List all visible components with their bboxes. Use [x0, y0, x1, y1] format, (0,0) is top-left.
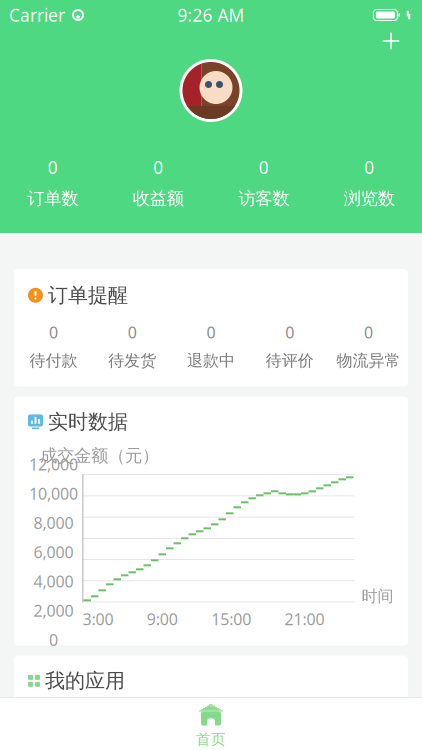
button[interactable]: 0 — [14, 322, 93, 370]
staticText: 订单数 — [27, 188, 78, 209]
staticText: 0 — [128, 322, 137, 343]
staticText: 0 — [153, 156, 163, 179]
staticText: 6,000 — [33, 541, 73, 562]
staticText: 退款中 — [187, 351, 235, 370]
staticText: 0 — [259, 156, 269, 179]
staticText: 订单提醒 — [48, 283, 128, 308]
staticText: 0 — [364, 322, 373, 343]
button[interactable]: Add — [370, 25, 412, 57]
staticText: 浏览数 — [344, 188, 395, 209]
staticText: 0 — [206, 322, 215, 343]
button[interactable]: 0 — [105, 156, 211, 209]
staticText: 0 — [49, 322, 58, 343]
staticText: 0 — [48, 156, 58, 179]
staticText: 收益额 — [133, 188, 184, 209]
staticText: 实时数据 — [48, 409, 128, 434]
button[interactable]: 0 — [316, 156, 422, 209]
staticText: 9:26 AM — [177, 3, 244, 26]
button[interactable]: 商品 — [146, 707, 276, 750]
staticText: 10,000 — [29, 483, 78, 504]
staticText: 15:00 — [211, 608, 251, 629]
staticText: 21:00 — [284, 608, 324, 629]
button[interactable]: 0 — [172, 322, 250, 370]
staticText: 首页 — [196, 730, 226, 748]
button[interactable]: 0 — [93, 322, 172, 370]
staticText: 待评价 — [266, 351, 314, 370]
staticText: 0 — [285, 322, 294, 343]
button[interactable]: 0 — [0, 156, 105, 209]
staticText: 12,000 — [29, 454, 78, 475]
staticText: 时间 — [361, 586, 393, 606]
staticText: Carrier — [9, 3, 65, 26]
staticText: 访客数 — [238, 188, 289, 209]
staticText: 0 — [49, 629, 58, 650]
staticText: 待发货 — [108, 351, 156, 370]
staticText: 2,000 — [33, 600, 73, 621]
staticText: 9:00 — [147, 608, 178, 629]
button[interactable]: 0 — [250, 322, 329, 370]
staticText: 我的应用 — [45, 669, 125, 693]
button[interactable]: 0 — [329, 322, 408, 370]
button[interactable]: 首页 — [0, 698, 422, 750]
staticText: 4,000 — [33, 571, 73, 592]
staticText: 0 — [364, 156, 374, 179]
staticText: 8,000 — [33, 512, 73, 533]
staticText: 成交金额（元） — [40, 445, 159, 466]
staticText: 物流异常 — [337, 351, 401, 370]
button[interactable]: 0 — [211, 156, 316, 209]
staticText: 待付款 — [29, 351, 77, 370]
staticText: 3:00 — [82, 608, 113, 629]
